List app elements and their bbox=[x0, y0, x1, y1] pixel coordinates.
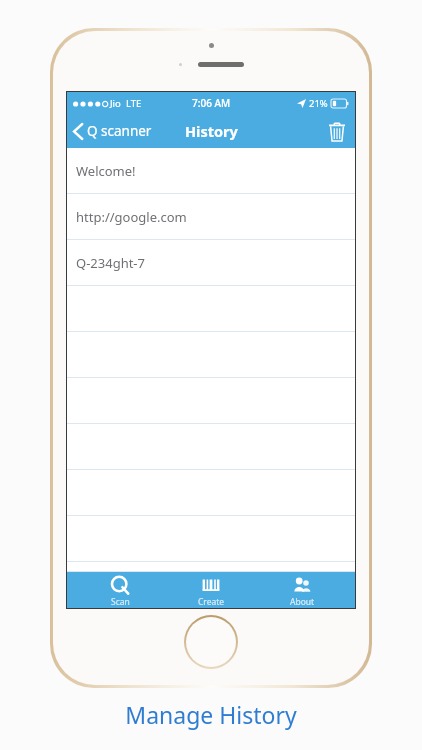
staticText: History bbox=[185, 121, 238, 141]
staticText: http://google.com bbox=[76, 208, 187, 226]
button[interactable]: Home bbox=[184, 615, 238, 669]
staticText: Manage History bbox=[125, 699, 297, 730]
button[interactable] bbox=[67, 470, 355, 516]
button[interactable] bbox=[67, 378, 355, 424]
button[interactable]: Q scanner bbox=[71, 118, 155, 144]
button[interactable]: Welcome! bbox=[67, 148, 355, 194]
staticText: Jio bbox=[110, 97, 121, 110]
button[interactable]: Scan bbox=[88, 572, 152, 608]
staticText: Create bbox=[198, 596, 225, 605]
button[interactable] bbox=[67, 562, 355, 572]
staticText: About bbox=[290, 596, 315, 605]
staticText: Scan bbox=[111, 596, 130, 605]
button[interactable] bbox=[67, 286, 355, 332]
button[interactable]: Create bbox=[179, 572, 243, 608]
button[interactable]: http://google.com bbox=[67, 194, 355, 240]
staticText: Q-234ght-7 bbox=[76, 254, 145, 272]
button[interactable] bbox=[67, 332, 355, 378]
staticText: 7:06 AM bbox=[192, 96, 231, 110]
staticText: LTE bbox=[126, 97, 142, 110]
staticText: 21% bbox=[309, 97, 328, 110]
staticText: Q scanner bbox=[87, 122, 152, 140]
staticText: Welcome! bbox=[76, 162, 136, 180]
button[interactable] bbox=[67, 424, 355, 470]
button[interactable]: Q-234ght-7 bbox=[67, 240, 355, 286]
button[interactable]: Delete history bbox=[325, 118, 349, 145]
button[interactable] bbox=[67, 516, 355, 562]
button[interactable]: About bbox=[270, 572, 334, 608]
